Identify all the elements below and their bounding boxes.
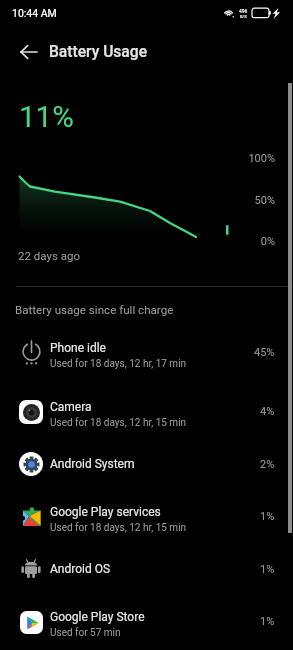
button[interactable]: Back: [4, 28, 52, 76]
staticText: 11%: [19, 100, 74, 135]
staticText: 2%: [260, 458, 275, 471]
staticText: 1%: [260, 615, 275, 628]
staticText: Phone idle: [50, 341, 106, 355]
button[interactable]: Camera: [0, 382, 293, 441]
staticText: 100%: [200, 152, 275, 165]
button[interactable]: Google Play services: [0, 487, 293, 546]
staticText: Android System: [50, 457, 135, 471]
staticText: B/S: [240, 14, 247, 19]
staticText: 50%: [200, 194, 275, 207]
staticText: Used for 57 min: [50, 627, 121, 639]
staticText: 0%: [200, 235, 275, 248]
staticText: 10:44 AM: [12, 7, 57, 19]
staticText: Battery usage since full charge: [15, 303, 174, 317]
staticText: Google Play Store: [50, 610, 145, 624]
button[interactable]: Android OS: [0, 546, 293, 592]
staticText: Camera: [50, 400, 92, 414]
staticText: Android OS: [50, 562, 111, 576]
staticText: 45%: [254, 346, 275, 359]
staticText: Used for 18 days, 12 hr, 15 min: [50, 522, 187, 534]
staticText: 496: [239, 8, 248, 14]
staticText: 1%: [260, 510, 275, 523]
staticText: 22 days ago: [18, 249, 80, 262]
button[interactable]: Phone idle: [0, 323, 293, 382]
staticText: Battery Usage: [49, 43, 148, 61]
staticText: Google Play services: [50, 505, 161, 519]
staticText: 4%: [260, 405, 275, 418]
staticText: 1%: [260, 563, 275, 576]
button[interactable]: Google Play Store: [0, 592, 293, 650]
staticText: Used for 18 days, 12 hr, 17 min: [50, 358, 187, 370]
button[interactable]: Android System: [0, 441, 293, 487]
staticText: Used for 18 days, 12 hr, 15 min: [50, 417, 187, 429]
